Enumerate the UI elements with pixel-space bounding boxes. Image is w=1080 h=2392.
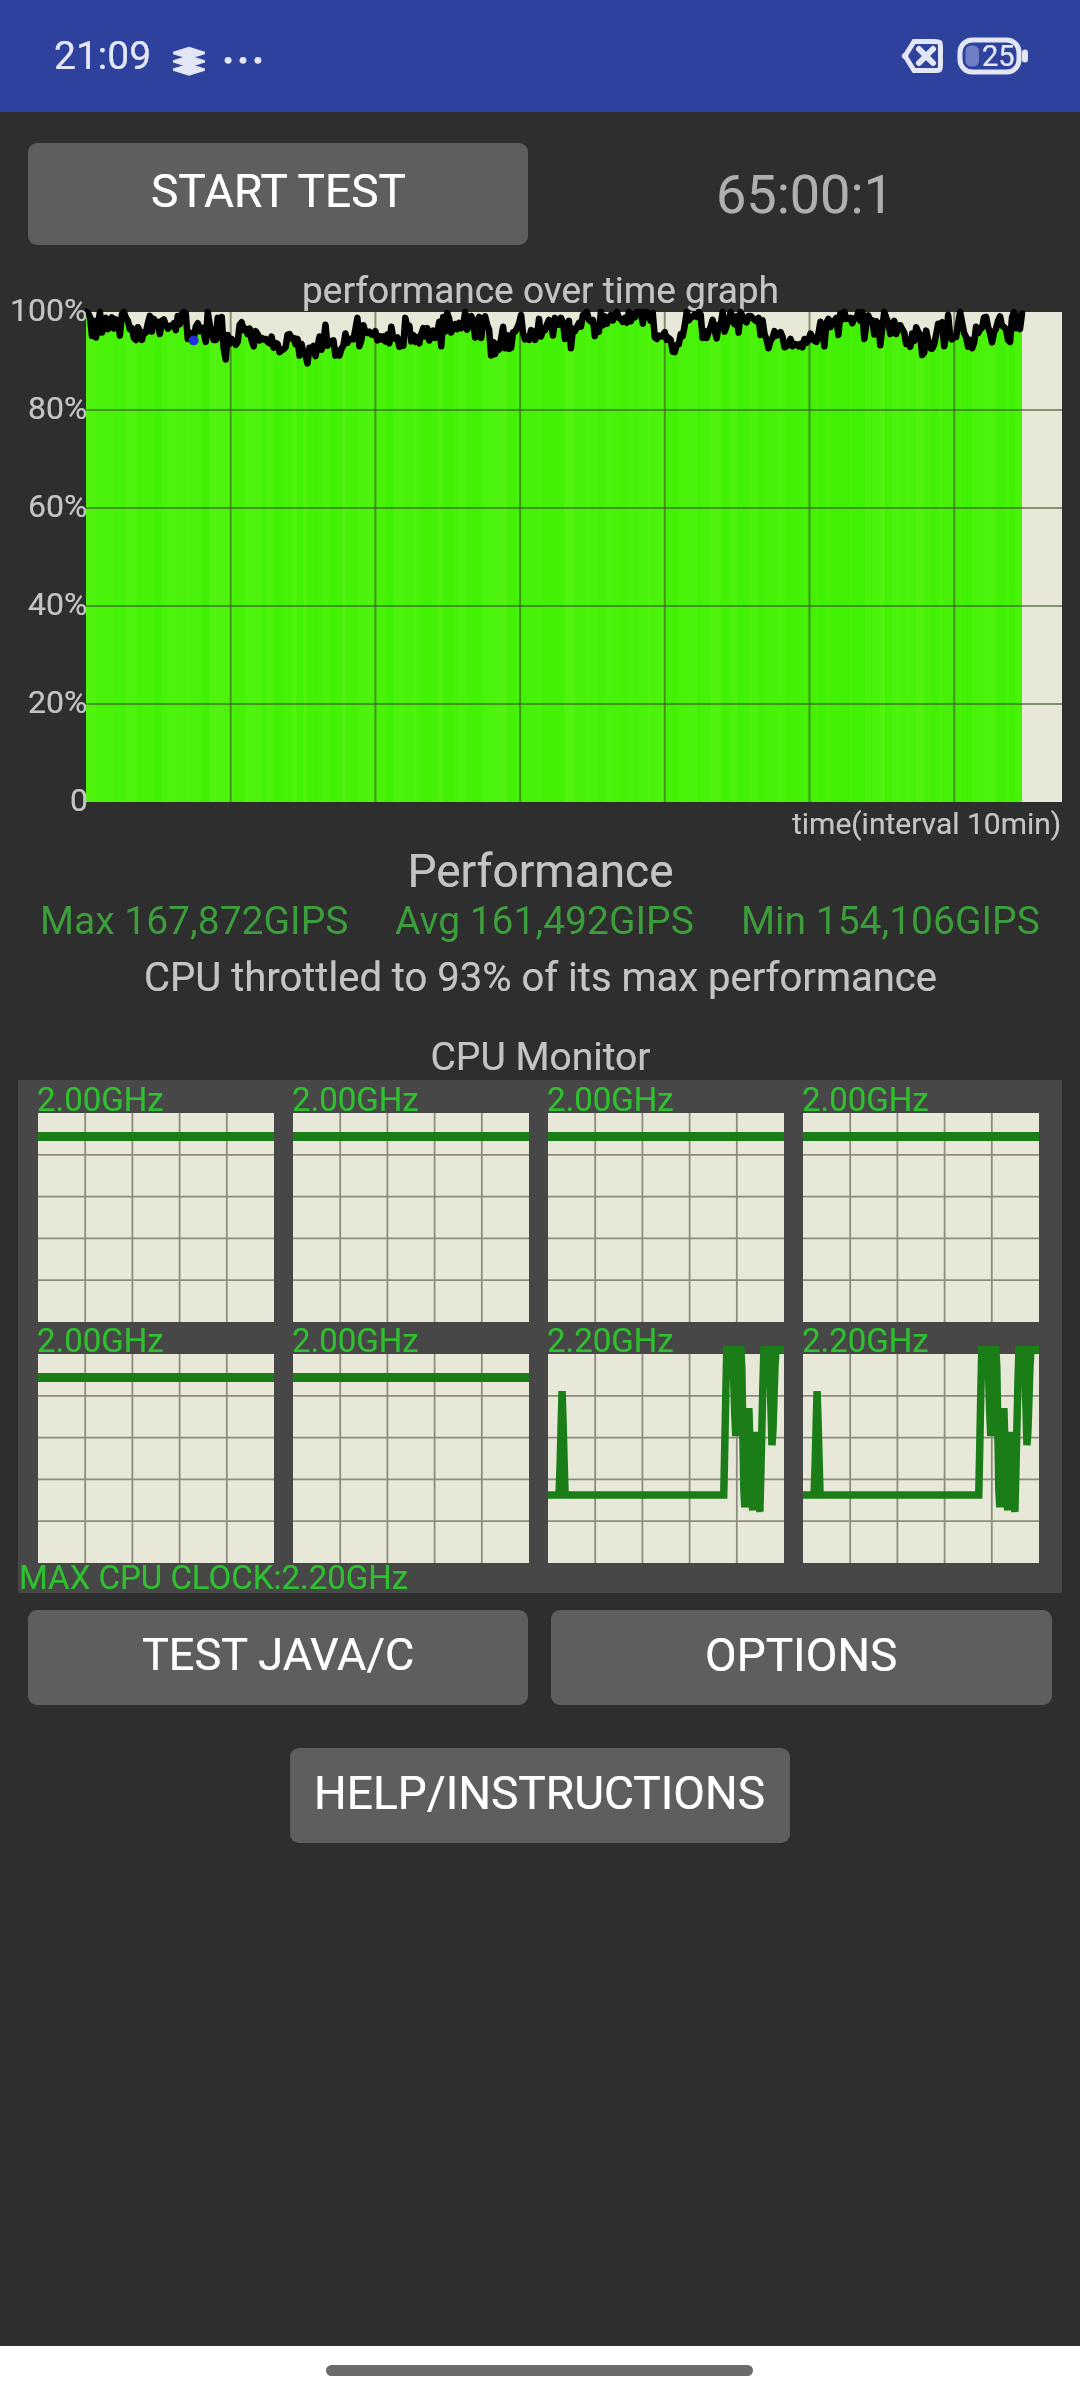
staticText: Min 154,106GIPS xyxy=(741,898,1040,944)
staticText: START TEST xyxy=(151,164,406,218)
staticText: 2.00GHz xyxy=(292,1080,419,1113)
button[interactable]: HELP/INSTRUCTIONS xyxy=(290,1748,790,1843)
staticText: 2.00GHz xyxy=(37,1080,164,1113)
other: Notifications silenced xyxy=(902,39,943,73)
staticText: 0 xyxy=(70,781,88,819)
staticText: OPTIONS xyxy=(705,1628,898,1682)
staticText: 2.20GHz xyxy=(547,1321,674,1354)
button[interactable]: OPTIONS xyxy=(551,1610,1052,1705)
staticText: CPU throttled to 93% of its max performa… xyxy=(144,954,937,1001)
button[interactable]: START TEST xyxy=(28,143,528,245)
staticText: 21:09 xyxy=(54,33,152,79)
staticText: 2.00GHz xyxy=(802,1080,929,1113)
staticText: 2.00GHz xyxy=(37,1321,164,1354)
staticText: Performance xyxy=(407,844,674,898)
staticText: 60% xyxy=(28,487,88,525)
staticText: 2.00GHz xyxy=(292,1321,419,1354)
staticText: 100% xyxy=(10,291,88,329)
staticText: CPU Monitor xyxy=(430,1034,651,1080)
staticText: HELP/INSTRUCTIONS xyxy=(314,1766,766,1820)
staticText: performance over time graph xyxy=(302,269,779,312)
staticText: 65:00:1 xyxy=(716,163,894,226)
staticText: 40% xyxy=(28,585,88,623)
staticText: MAX CPU CLOCK:2.20GHz xyxy=(19,1558,409,1592)
staticText: 25 xyxy=(982,39,1015,73)
staticText: 80% xyxy=(28,389,88,427)
button[interactable]: TEST JAVA/C xyxy=(28,1610,528,1705)
staticText: 20% xyxy=(28,683,88,721)
staticText: 2.20GHz xyxy=(802,1321,929,1354)
staticText: Avg 161,492GIPS xyxy=(395,898,694,944)
staticText: 2.00GHz xyxy=(547,1080,674,1113)
staticText: TEST JAVA/C xyxy=(142,1628,415,1681)
staticText: Max 167,872GIPS xyxy=(40,898,349,944)
staticText: time(interval 10min) xyxy=(792,806,1062,841)
